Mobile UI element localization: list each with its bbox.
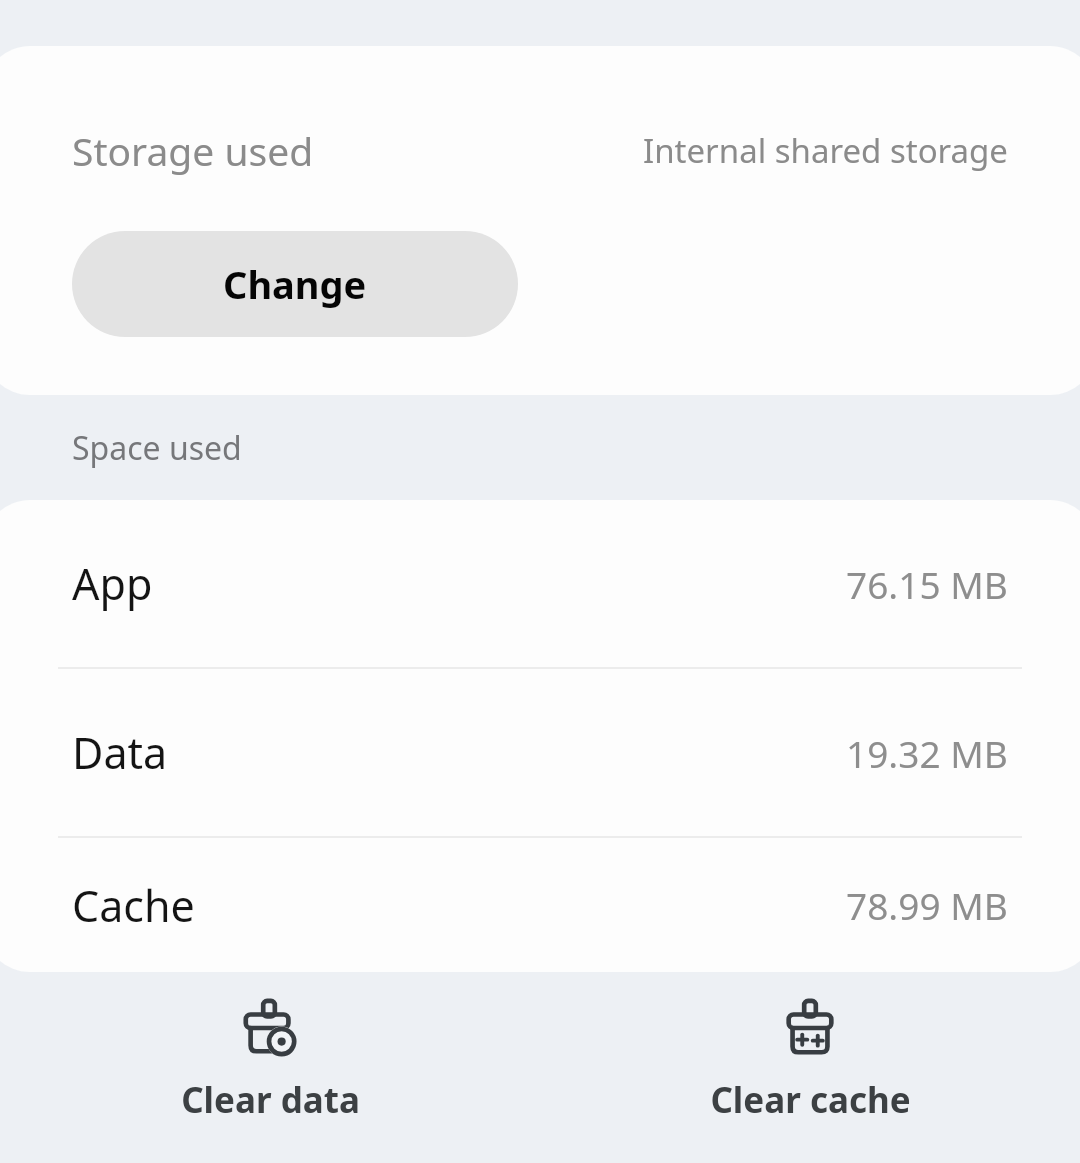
staticText: Internal shared storage [643, 128, 1008, 173]
staticText: 76.15 MB [846, 559, 1008, 609]
button[interactable]: Change [72, 231, 518, 337]
staticText: Data [72, 723, 168, 782]
other: Clear cache [779, 998, 841, 1060]
staticText: App [72, 554, 153, 613]
staticText: Clear cache [710, 1076, 911, 1124]
staticText: Cache [72, 876, 195, 935]
staticText: 78.99 MB [846, 880, 1008, 930]
button[interactable]: Clear cache [540, 986, 1080, 1132]
button[interactable]: App [0, 500, 1080, 667]
staticText: 19.32 MB [846, 728, 1008, 778]
button[interactable]: Data [0, 669, 1080, 836]
button[interactable]: Clear data [0, 986, 540, 1132]
staticText: Change [223, 258, 367, 310]
staticText: Clear data [181, 1076, 360, 1124]
staticText: Space used [72, 426, 242, 470]
button[interactable]: Cache [0, 838, 1080, 972]
staticText: Storage used [72, 124, 314, 177]
other: Clear data [239, 998, 301, 1060]
